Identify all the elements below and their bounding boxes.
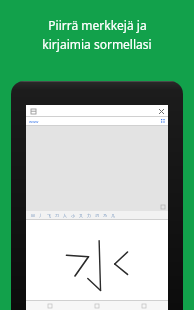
button[interactable]: Apps: [161, 119, 165, 123]
staticText: 飞: [47, 213, 51, 218]
staticText: Piirrä merkkejä ja: [48, 17, 147, 33]
button[interactable]: Key 1: [92, 302, 102, 309]
staticText: 目: [31, 213, 35, 218]
staticText: www: [29, 119, 39, 124]
staticText: 力: [87, 213, 91, 218]
button[interactable]: 刀: [55, 213, 59, 218]
staticText: 丿: [39, 213, 43, 218]
button[interactable]: 力: [87, 213, 91, 218]
button[interactable]: 乃: [103, 213, 107, 218]
button[interactable]: 飞: [47, 213, 51, 218]
staticText: 小: [71, 213, 75, 218]
staticText: 人: [63, 213, 67, 218]
button[interactable]: Key 0: [45, 302, 55, 309]
button[interactable]: Menu: [29, 107, 37, 115]
button[interactable]: Close: [157, 107, 165, 115]
button[interactable]: 人: [63, 213, 67, 218]
button[interactable]: Key 2: [139, 302, 149, 309]
button[interactable]: 又: [79, 213, 83, 218]
button[interactable]: 小: [71, 213, 75, 218]
staticText: 刀: [55, 213, 59, 218]
staticText: kirjaimia sormellasi: [42, 36, 152, 52]
button[interactable]: 丿: [39, 213, 43, 218]
button[interactable]: 目: [31, 213, 35, 218]
button[interactable]: 刃: [95, 213, 99, 218]
button[interactable]: 几: [111, 213, 115, 218]
staticText: 又: [79, 213, 83, 218]
staticText: 几: [111, 213, 115, 218]
staticText: 刃: [95, 213, 99, 218]
button[interactable]: [26, 220, 168, 300]
button[interactable]: www: [26, 117, 168, 125]
staticText: 乃: [103, 213, 107, 218]
